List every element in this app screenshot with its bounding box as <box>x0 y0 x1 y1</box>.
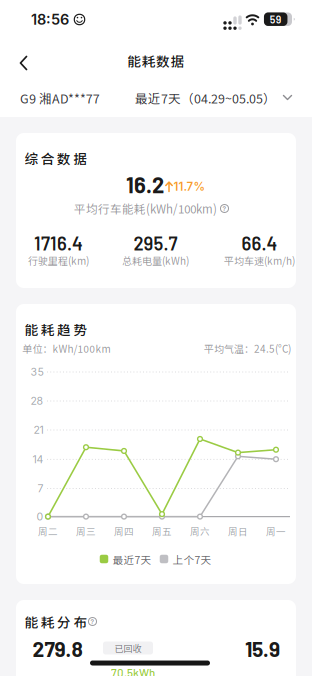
staticText: 行驶里程(km) <box>28 253 89 268</box>
staticText: 已回收 <box>114 641 141 654</box>
staticText: 周一 <box>266 524 286 538</box>
staticText: 能耗趋势 <box>24 319 87 339</box>
staticText: 周五 <box>152 524 172 538</box>
staticText: 周日 <box>228 524 248 538</box>
staticText: 35 <box>30 366 43 378</box>
staticText: 综合数据 <box>24 148 87 168</box>
staticText: 最近7天 <box>112 552 151 567</box>
staticText: 21 <box>33 424 43 436</box>
staticText: 11.7% <box>173 180 205 193</box>
staticText: 周四 <box>114 524 134 538</box>
staticText: 18:56 <box>31 11 69 28</box>
staticText: G9 湘AD***77 <box>20 89 100 107</box>
staticText: 16.2 <box>126 171 164 198</box>
staticText: 28 <box>30 395 43 407</box>
staticText: 能耗数据 <box>127 51 185 70</box>
staticText: 279.8 <box>32 636 82 661</box>
staticText: 0 <box>36 510 43 523</box>
staticText: 平均行车能耗(kWh/100km) <box>74 200 217 217</box>
staticText: 周二 <box>38 524 58 538</box>
staticText: 70.5kWh <box>111 666 155 676</box>
staticText: 平均车速(km/h) <box>224 253 295 268</box>
staticText: 能耗分布 <box>24 612 87 631</box>
staticText: ? <box>90 617 94 626</box>
staticText: 1716.4 <box>34 232 83 254</box>
staticText: 15.9 <box>245 636 280 661</box>
staticText: 59 <box>270 13 282 25</box>
staticText: 平均气温：24.5(°C) <box>204 341 291 356</box>
staticText: 周三 <box>76 524 96 538</box>
staticText: 295.7 <box>133 232 177 254</box>
staticText: 总耗电量(kWh) <box>122 253 189 268</box>
staticText: ? <box>222 204 226 213</box>
staticText: 7 <box>37 482 43 495</box>
staticText: 上个7天 <box>172 552 211 567</box>
staticText: 单位：kWh/100km <box>22 341 110 356</box>
staticText: 最近7天（04.29~05.05） <box>135 89 276 107</box>
staticText: 14 <box>32 453 43 466</box>
staticText: 周六 <box>190 524 210 538</box>
staticText: 66.4 <box>241 232 277 254</box>
